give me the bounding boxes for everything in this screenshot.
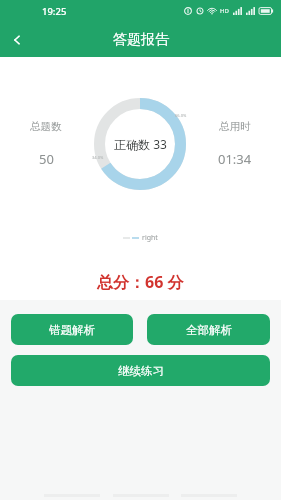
staticText: 总分：66 分 bbox=[97, 271, 184, 293]
staticText: 答题报告 bbox=[113, 31, 169, 49]
staticText: 总用时 bbox=[219, 120, 251, 133]
staticText: 34.0% bbox=[92, 155, 104, 160]
staticText: 正确数 33 bbox=[114, 136, 167, 152]
staticText: right bbox=[142, 233, 158, 243]
staticText: 错题解析 bbox=[49, 323, 95, 337]
button[interactable]: Navigation bbox=[113, 483, 169, 497]
button[interactable]: Navigation bbox=[44, 483, 100, 497]
button[interactable]: Navigation bbox=[181, 483, 237, 497]
button[interactable]: Back bbox=[0, 23, 34, 57]
button[interactable]: 错题解析 bbox=[11, 314, 133, 345]
staticText: HD bbox=[220, 7, 229, 15]
staticText: 全部解析 bbox=[186, 323, 232, 337]
button[interactable]: 全部解析 bbox=[147, 314, 270, 345]
staticText: 继续练习 bbox=[118, 364, 164, 378]
staticText: 50 bbox=[39, 150, 54, 168]
staticText: 66.0% bbox=[175, 113, 187, 118]
button[interactable]: 继续练习 bbox=[11, 355, 270, 386]
staticText: 总题数 bbox=[30, 120, 62, 133]
staticText: 19:25 bbox=[42, 5, 67, 18]
staticText: 01:34 bbox=[218, 150, 252, 168]
